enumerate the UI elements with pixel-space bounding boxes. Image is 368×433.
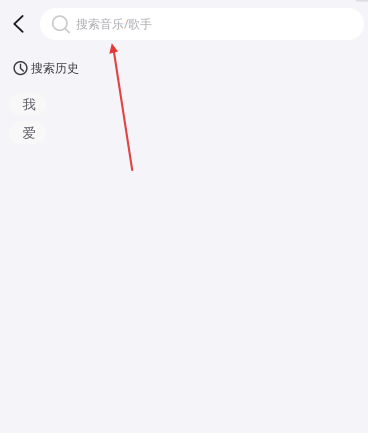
button[interactable]: Back — [0, 0, 34, 40]
button[interactable]: 搜索音乐/歌手 — [40, 8, 364, 40]
staticText: 我 — [23, 96, 36, 113]
staticText: 搜索音乐/歌手 — [76, 16, 152, 32]
button[interactable]: 我 — [9, 93, 46, 115]
staticText: 爱 — [23, 125, 36, 141]
button[interactable]: 爱 — [9, 121, 46, 144]
staticText: 搜索历史 — [31, 61, 79, 76]
